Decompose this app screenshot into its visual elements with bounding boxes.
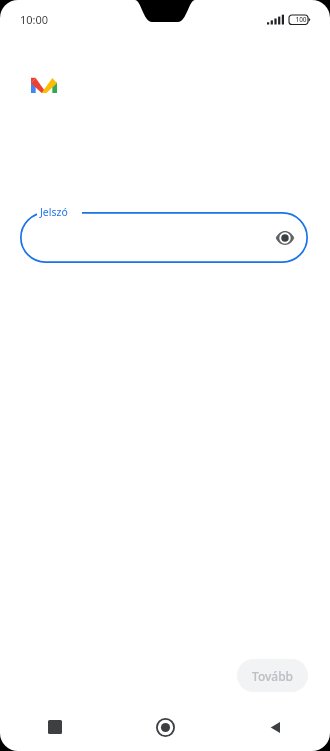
button[interactable]: Gmail [25, 65, 63, 103]
staticText: 10:00 [20, 12, 49, 27]
staticText: 100 [292, 15, 310, 24]
button[interactable]: Show password [275, 228, 295, 248]
button[interactable]: Home [110, 703, 220, 751]
button[interactable]: Back [220, 703, 330, 751]
button[interactable]: Tovább [237, 659, 308, 692]
staticText: Tovább [252, 668, 294, 684]
staticText: Jelszó [40, 205, 68, 219]
button[interactable]: Recents [0, 703, 110, 751]
